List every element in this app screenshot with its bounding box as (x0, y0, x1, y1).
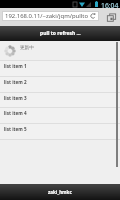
button[interactable]: Reload (88, 11, 97, 21)
button[interactable]: list item 3 (0, 93, 120, 108)
staticText: pull to refresh ... (40, 30, 81, 37)
button[interactable]: 192.168.0.11/~zaki/jqm/pullto (2, 11, 99, 21)
button[interactable]: pull to refresh ... (0, 26, 120, 41)
staticText: list item 5 (4, 126, 27, 132)
staticText: list item 2 (4, 79, 27, 85)
staticText: list item 4 (4, 110, 27, 116)
staticText: 192.168.0.11/~zaki/jqm/pullto (5, 12, 89, 20)
staticText: 更新中 (20, 45, 34, 51)
button[interactable]: Tabs (102, 8, 120, 26)
button[interactable]: list item 1 (0, 61, 120, 76)
button[interactable]: list item 2 (0, 77, 120, 92)
staticText: list item 3 (4, 95, 27, 101)
button[interactable]: zaki_hmkc (0, 184, 120, 200)
staticText: list item 1 (4, 63, 27, 69)
staticText: zaki_hmkc (48, 189, 72, 195)
staticText: 16:04 (101, 1, 119, 9)
button[interactable]: list item 5 (0, 124, 120, 139)
button[interactable]: list item 4 (0, 108, 120, 123)
